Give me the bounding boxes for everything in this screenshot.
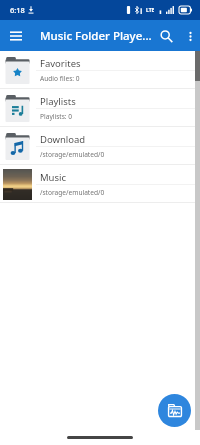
button[interactable]: Favorites	[0, 51, 200, 89]
button[interactable]: Playlists	[0, 89, 200, 127]
button[interactable]: Search	[152, 22, 180, 50]
staticText: 6:18	[10, 5, 25, 15]
staticText: /storage/emulated/0	[40, 188, 105, 197]
staticText: Music	[40, 171, 67, 184]
staticText: Music Folder Playe...	[40, 28, 152, 44]
button[interactable]: Download	[0, 127, 200, 165]
staticText: LTE	[146, 7, 155, 14]
button[interactable]: Music	[0, 165, 200, 203]
button[interactable]: Navigation menu	[0, 20, 31, 51]
staticText: Playlists: 0	[40, 112, 73, 121]
staticText: /storage/emulated/0	[40, 150, 105, 159]
button[interactable]: Add music folder	[158, 394, 191, 427]
staticText: Audio files: 0	[40, 74, 80, 83]
staticText: Download	[40, 133, 86, 146]
staticText: Playlists	[40, 95, 76, 108]
button[interactable]: More options	[180, 23, 200, 49]
staticText: Favorites	[40, 57, 81, 70]
